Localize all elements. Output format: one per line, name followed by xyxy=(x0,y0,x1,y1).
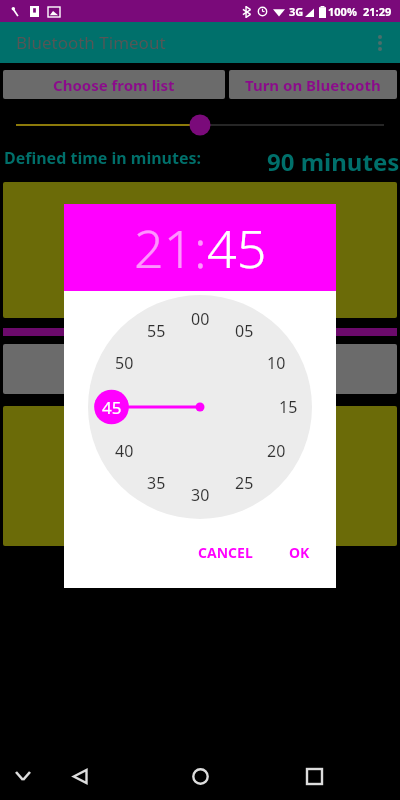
staticText: 35 xyxy=(147,472,166,494)
button[interactable]: 00 xyxy=(183,302,217,336)
staticText: 05 xyxy=(235,320,254,342)
button[interactable] xyxy=(0,115,400,135)
button[interactable]: 50 xyxy=(107,346,141,380)
button[interactable]: Turn on Bluetooth xyxy=(229,70,397,99)
staticText: Turn on Bluetooth xyxy=(245,75,381,95)
button[interactable]: OK xyxy=(279,537,320,568)
button[interactable]: Or set the alarm clock for a specific ti… xyxy=(3,344,397,394)
staticText: 25 xyxy=(235,472,254,494)
button[interactable]: 15 xyxy=(271,390,305,424)
staticText: 55 xyxy=(147,320,166,342)
button[interactable]: Hide keyboard xyxy=(6,759,40,793)
button[interactable] xyxy=(3,182,397,318)
staticText: : xyxy=(194,212,207,283)
button[interactable]: 10 xyxy=(259,346,293,380)
button[interactable]: 35 xyxy=(139,466,173,500)
staticText: Or set the alarm clock for a specific ti… xyxy=(111,349,290,389)
button[interactable]: 25 xyxy=(227,466,261,500)
staticText: 10 xyxy=(267,352,286,374)
staticText: 45 xyxy=(102,396,122,419)
staticText: 20 xyxy=(267,440,286,462)
staticText: 40 xyxy=(115,440,134,462)
staticText: CANCEL xyxy=(198,543,253,562)
button[interactable]: 55 xyxy=(139,314,173,348)
button[interactable]: 05 xyxy=(227,314,261,348)
staticText: 45 xyxy=(207,212,267,283)
staticText: Choose from list xyxy=(53,75,175,95)
staticText: Defined time in minutes: xyxy=(4,147,202,169)
staticText: Bluetooth Timeout xyxy=(16,31,166,54)
staticText: 15 xyxy=(279,396,298,418)
button[interactable]: Recent apps xyxy=(296,758,332,794)
staticText: 21:29 xyxy=(363,4,392,19)
button[interactable]: 45 xyxy=(95,390,129,424)
staticText: 30 xyxy=(191,484,210,506)
button[interactable]: Home xyxy=(181,757,219,795)
button[interactable]: Choose from list xyxy=(3,70,225,99)
button[interactable]: CANCEL xyxy=(188,537,263,568)
staticText: 21 xyxy=(134,212,194,283)
staticText: 50 xyxy=(115,352,134,374)
button[interactable] xyxy=(3,406,397,546)
staticText: 00 xyxy=(191,308,210,330)
button[interactable]: Back xyxy=(62,758,98,794)
staticText: OK xyxy=(289,543,310,562)
button[interactable]: 20 xyxy=(259,434,293,468)
button[interactable]: 40 xyxy=(107,434,141,468)
button[interactable]: More options xyxy=(360,23,400,63)
staticText: 3G xyxy=(289,4,304,19)
button[interactable]: 30 xyxy=(183,478,217,512)
staticText: 100% xyxy=(328,4,357,19)
staticText: 90 minutes xyxy=(267,145,400,171)
